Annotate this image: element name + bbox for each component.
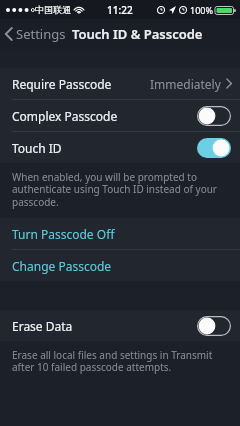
staticText: 11:22 [107,3,133,17]
staticText: Immediately [150,76,221,92]
button[interactable]: Change Passcode [0,250,240,281]
button[interactable]: Touch ID [197,138,231,158]
staticText: Touch ID & Passcode [72,25,203,43]
staticText: When enabled, you will be prompted to au… [12,170,227,209]
staticText: Require Passcode [12,76,112,92]
button[interactable]: Erase Data [197,316,231,336]
staticText: Settings [16,25,66,43]
staticText: Turn Passcode Off [12,226,115,242]
staticText: Erase all local files and settings in Tr… [12,348,227,374]
button[interactable]: Require Passcode [0,68,240,99]
button[interactable]: Complex Passcode [197,106,231,126]
staticText: Complex Passcode [12,108,118,124]
button[interactable]: Erase Data [0,310,240,341]
staticText: Touch ID [12,140,62,156]
button[interactable]: Complex Passcode [0,100,240,131]
button[interactable]: Turn Passcode Off [0,218,240,249]
button[interactable]: Settings [0,21,70,47]
staticText: Change Passcode [12,258,112,274]
staticText: 100% [190,4,213,16]
staticText: Erase Data [12,318,73,334]
staticText: 中国联通 [35,4,71,15]
button[interactable]: Touch ID [0,132,240,163]
